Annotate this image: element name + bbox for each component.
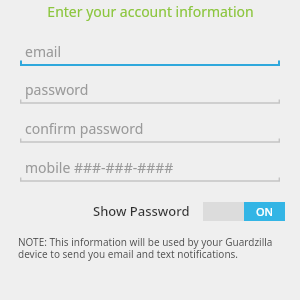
staticText: confirm password (25, 119, 144, 138)
button[interactable]: Show Password toggle, on (203, 201, 285, 221)
button[interactable]: confirm password (20, 116, 280, 147)
button[interactable]: password (20, 77, 280, 108)
staticText: Enter your account information (47, 2, 254, 21)
staticText: mobile ###-###-#### (25, 158, 174, 177)
button[interactable]: email (20, 39, 280, 70)
staticText: password (25, 80, 89, 99)
staticText: ON (256, 204, 274, 219)
button[interactable]: mobile ###-###-#### (20, 155, 280, 186)
staticText: email (25, 42, 62, 61)
staticText: Show Password (93, 202, 190, 220)
staticText: NOTE: This information will be used by y… (18, 235, 284, 261)
